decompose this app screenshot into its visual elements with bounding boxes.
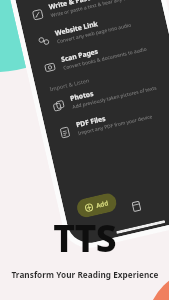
staticText: TTS <box>53 212 116 262</box>
button[interactable]: Website Link <box>23 0 167 57</box>
staticText: Write & Paste Text <box>48 0 110 11</box>
staticText: Scan Pages <box>60 47 99 64</box>
staticText: Import any PDF from your device <box>77 113 153 137</box>
button[interactable]: Add <box>75 192 118 219</box>
staticText: Write or paste a text & hear any text <box>50 0 132 19</box>
staticText: Convert books & documents to audio <box>62 46 148 72</box>
button[interactable]: Photos <box>38 64 169 123</box>
staticText: Add previously taken pictures of texts <box>71 84 158 111</box>
button[interactable]: Scan Pages <box>29 25 169 84</box>
staticText: PDF Files <box>75 114 106 129</box>
button[interactable]: PDF Files <box>44 91 169 149</box>
staticText: Add <box>95 198 109 210</box>
button[interactable] <box>11 0 154 3</box>
button[interactable]: Library <box>124 194 148 218</box>
staticText: Website Link <box>54 19 99 38</box>
staticText: Import & Listen <box>48 76 90 92</box>
staticText: Transform Your Reading Experience <box>11 269 159 280</box>
button[interactable]: Write & Paste Text <box>16 0 161 31</box>
staticText: Convert any web page into audio <box>56 22 132 45</box>
staticText: Photos <box>69 89 94 103</box>
